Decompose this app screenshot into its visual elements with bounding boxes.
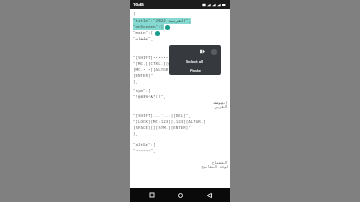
button[interactable]: Translate [198,47,207,56]
staticText: 10:45 [133,2,144,8]
staticText: لوحة المفاتيح [133,164,228,169]
staticText: "sym":[ [133,88,151,94]
staticText: [MC.• •][ALTGR.][SPACE][][SYM.] [133,67,211,73]
staticText: "[LOCK][MC:123][-123][ALTGR.] [133,119,206,125]
button[interactable]: Paste [169,66,221,75]
staticText: "!@#$%^&*()", [133,94,166,100]
button[interactable]: Select all [169,57,221,66]
staticText: ], [133,79,139,85]
button[interactable]: Home [173,188,187,202]
staticText: ], [133,131,139,137]
staticText: "¬¬¬¬¬¬", [133,148,156,154]
staticText: "ملفات", [133,36,154,42]
staticText: "title":"2022 العربية", [133,18,191,24]
staticText: العربي [133,105,228,109]
button[interactable]: More options [209,47,218,56]
staticText: إنهوصف [133,100,228,105]
staticText: { [133,11,136,17]
staticText: "[SHIFT].-.'...][DEL]", [133,113,191,119]
staticText: "main":[ [133,30,154,36]
staticText: [ENTER]" [133,73,154,79]
staticText: "altGr":[ [133,142,156,148]
staticText: Paste [190,68,201,74]
staticText: "[MC.][CTRL.][⚙][MC.][EDIT][↵↑←] [133,61,214,67]
button[interactable]: Recents [145,188,159,202]
button[interactable]: Back [202,188,216,202]
staticText: "[SHIFT]•••••• [133,55,169,61]
staticText: [SPACE][][SYM.][ENTER]" [133,125,191,131]
staticText: Select all [186,59,204,65]
staticText: "onScreen":[ [133,24,164,30]
staticText: المفتاح [133,160,228,164]
